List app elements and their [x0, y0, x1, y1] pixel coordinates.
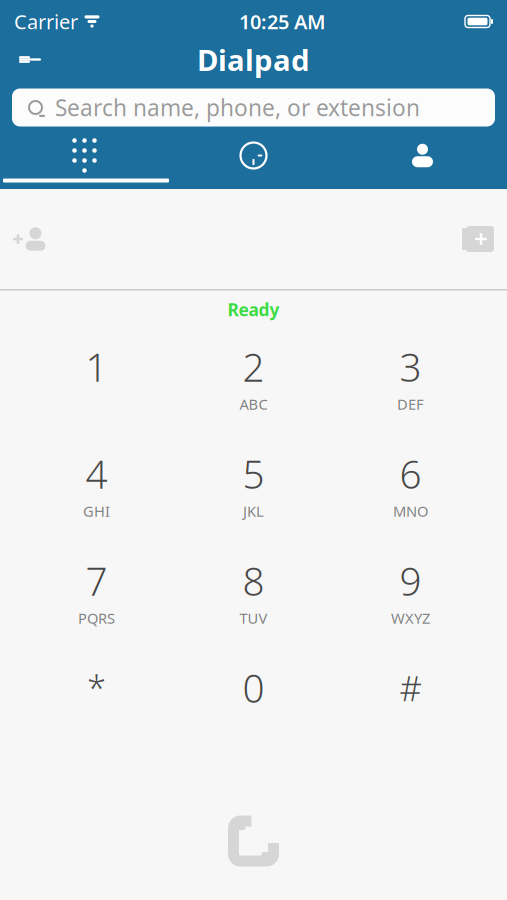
button[interactable]: 6 [350, 441, 470, 527]
staticText: ABC [239, 394, 267, 414]
button[interactable]: Dialpad [0, 134, 169, 176]
staticText: DEF [397, 394, 424, 414]
staticText: Carrier [14, 8, 78, 35]
staticText: 4 [85, 448, 107, 499]
button[interactable]: 3 [350, 334, 470, 420]
staticText: WXYZ [391, 608, 430, 628]
button[interactable]: Add contact [2, 213, 56, 265]
staticText: 10:25 AM [239, 8, 326, 35]
staticText: 6 [399, 448, 421, 499]
button[interactable]: 8 [193, 548, 313, 634]
button[interactable]: # [350, 655, 470, 741]
staticText: JKL [243, 501, 264, 521]
staticText: 0 [242, 662, 264, 713]
button[interactable]: Contacts [338, 134, 507, 176]
staticText: 7 [85, 555, 107, 606]
staticText: MNO [393, 501, 428, 521]
button[interactable]: Recents [169, 134, 338, 176]
button[interactable]: 5 [193, 441, 313, 527]
button[interactable]: 4 [36, 441, 156, 527]
staticText: 8 [242, 555, 264, 606]
staticText: 3 [399, 341, 421, 392]
button[interactable]: Delete [451, 213, 505, 265]
staticText: Dialpad [197, 40, 310, 79]
button[interactable]: 0 [193, 655, 313, 741]
button[interactable]: * [36, 655, 156, 741]
staticText: GHI [83, 501, 110, 521]
staticText: 5 [242, 448, 264, 499]
staticText: Ready [227, 298, 279, 321]
staticText: 9 [399, 555, 421, 606]
staticText: # [399, 665, 421, 711]
staticText: 1 [85, 341, 107, 392]
button[interactable]: 7 [36, 548, 156, 634]
staticText: 2 [242, 341, 264, 392]
button[interactable]: Back [8, 37, 52, 81]
staticText: Search name, phone, or extension [55, 92, 420, 122]
staticText: PQRS [78, 608, 115, 628]
button[interactable]: Call [213, 806, 293, 876]
button[interactable]: 1 [36, 334, 156, 420]
staticText: * [87, 665, 106, 711]
button[interactable]: Search name, phone, or extension [12, 88, 495, 126]
staticText: TUV [239, 608, 267, 628]
button[interactable]: 2 [193, 334, 313, 420]
button[interactable]: 9 [350, 548, 470, 634]
